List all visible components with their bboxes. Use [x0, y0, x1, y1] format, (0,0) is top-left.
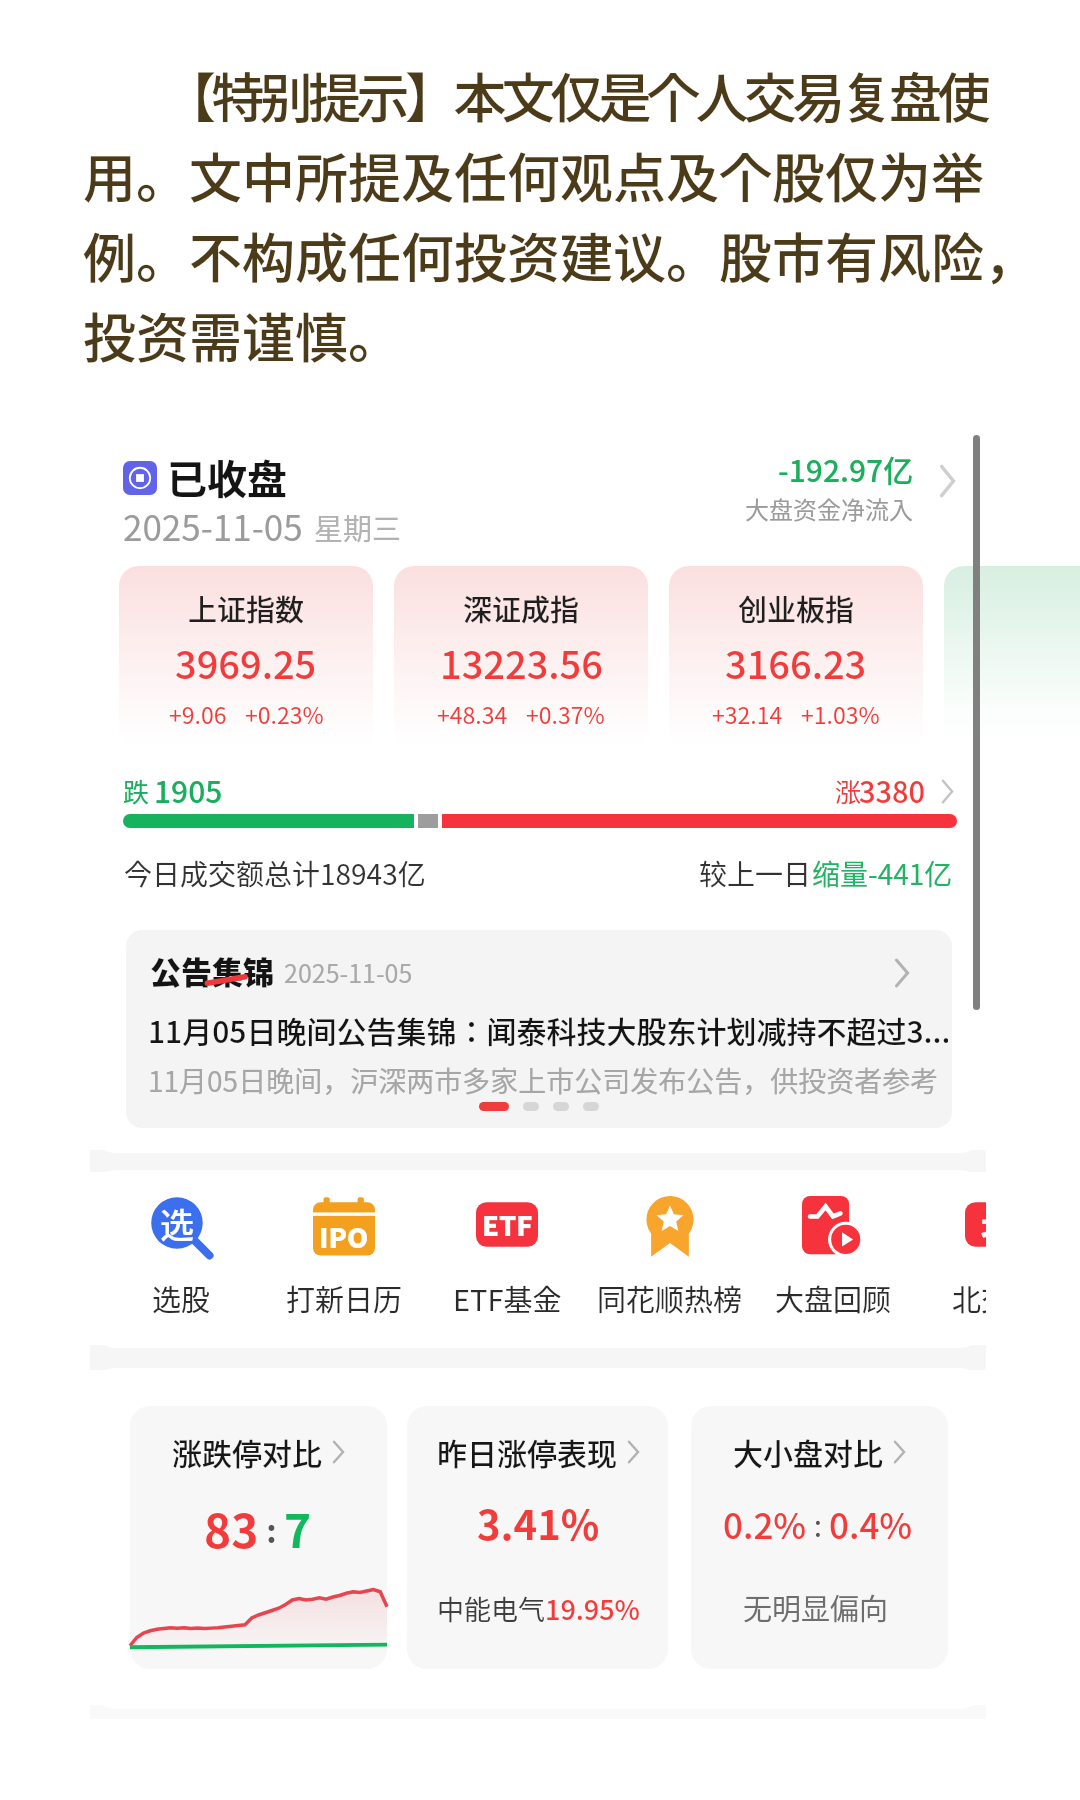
- staticText: 11月05日晚间，沪深两市多家上市公司发布公告，供投资者参考：重...: [148, 1060, 948, 1101]
- staticText: 中能电气: [437, 1589, 545, 1628]
- staticText: 用。文中所提及任何观点及个股仅为举 例。不构成任何投资建议。股市有风险， 投资需…: [83, 137, 1037, 373]
- button[interactable]: [691, 1406, 948, 1669]
- button[interactable]: 公告集锦: [126, 930, 952, 1128]
- staticText: 涨跌停对比: [172, 1430, 322, 1473]
- staticText: :: [259, 1506, 284, 1552]
- staticText: 今日成交额总计18943亿: [124, 853, 426, 894]
- staticText: 选: [160, 1199, 194, 1248]
- staticText: 跌: [123, 772, 150, 810]
- staticText: 北: [981, 1203, 986, 1246]
- staticText: 上证指数: [188, 587, 305, 629]
- staticText: 公告集锦: [150, 948, 274, 993]
- staticText: 2025-11-05: [284, 954, 413, 990]
- button[interactable]: [130, 1406, 387, 1669]
- button[interactable]: 深证成指: [394, 566, 648, 749]
- staticText: 3166.23: [725, 635, 867, 690]
- staticText: 1905: [154, 768, 223, 811]
- button[interactable]: ETF基金: [426, 1196, 588, 1319]
- button[interactable]: 创业板指: [669, 566, 923, 749]
- staticText: 0.2%: [723, 1498, 807, 1549]
- staticText: +0.23%: [245, 697, 324, 730]
- button[interactable]: 同花顺热榜: [589, 1196, 751, 1319]
- staticText: 深证成指: [463, 587, 580, 629]
- staticText: 13223.56: [440, 635, 603, 690]
- staticText: 7: [284, 1495, 312, 1562]
- button[interactable]: 北交所: [915, 1196, 986, 1319]
- button[interactable]: [944, 566, 1080, 749]
- button[interactable]: 上证指数: [119, 566, 373, 749]
- staticText: 0.4%: [829, 1498, 913, 1549]
- button[interactable]: 大盘回顾: [752, 1196, 914, 1319]
- staticText: 无明显偏向: [743, 1586, 889, 1628]
- staticText: 已收盘: [167, 448, 287, 506]
- staticText: +0.37%: [526, 697, 605, 730]
- staticText: +32.14: [712, 697, 783, 730]
- staticText: 3969.25: [175, 635, 317, 690]
- staticText: 涨: [835, 772, 862, 810]
- staticText: 11月05日晚间公告集锦：闻泰科技大股东计划减持不超过3...: [148, 1008, 948, 1051]
- staticText: 19.95%: [545, 1589, 640, 1628]
- staticText: 【特别提示】本文仅是个人交易复盘使: [163, 57, 986, 134]
- staticText: 3.41%: [477, 1494, 600, 1552]
- other: 同花顺热榜: [639, 1196, 701, 1258]
- other: 选股: [150, 1196, 212, 1258]
- button[interactable]: 打新日历: [263, 1196, 425, 1319]
- staticText: 较上一日: [699, 853, 812, 894]
- staticText: +9.06: [169, 697, 227, 730]
- other: 北交所: [965, 1196, 986, 1258]
- other: ETF基金: [476, 1196, 538, 1258]
- staticText: +48.34: [437, 697, 508, 730]
- staticText: ETF: [482, 1205, 533, 1244]
- button[interactable]: 选股: [100, 1196, 262, 1319]
- staticText: 昨日涨停表现: [437, 1430, 617, 1473]
- staticText: 同花顺热榜: [597, 1277, 743, 1319]
- staticText: IPO: [319, 1217, 369, 1256]
- staticText: 大盘资金净流入: [745, 491, 913, 526]
- staticText: 选股: [152, 1277, 211, 1319]
- staticText: 缩量-441亿: [812, 853, 953, 894]
- staticText: :: [807, 1502, 829, 1545]
- staticText: 2025-11-05: [123, 500, 303, 551]
- staticText: 打新日历: [286, 1277, 403, 1319]
- staticText: +1.03%: [801, 697, 880, 730]
- staticText: 3380: [859, 769, 926, 811]
- staticText: 83: [204, 1495, 259, 1562]
- staticText: 大盘回顾: [775, 1277, 892, 1319]
- button[interactable]: [407, 1406, 668, 1669]
- other: 打新日历: [313, 1196, 375, 1258]
- other: 大盘回顾: [802, 1196, 864, 1258]
- staticText: ETF基金: [453, 1277, 562, 1319]
- staticText: 创业板指: [738, 587, 855, 629]
- staticText: 星期三: [314, 506, 402, 548]
- staticText: 大小盘对比: [733, 1430, 883, 1473]
- staticText: 北交所: [952, 1277, 986, 1319]
- staticText: -192.97亿: [778, 447, 914, 490]
